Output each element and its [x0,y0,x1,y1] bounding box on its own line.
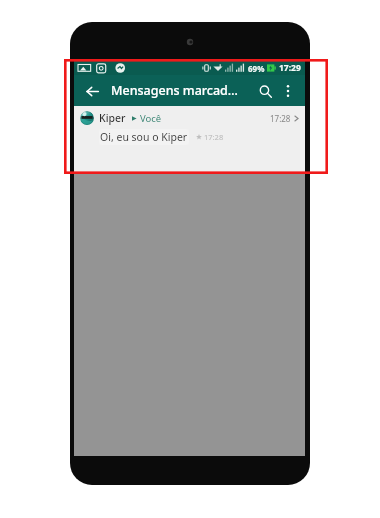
button[interactable]: Kiper [74,106,305,145]
staticText: 17:28 [270,113,291,124]
staticText: Mensagens marcad… [111,82,253,99]
staticText: 69% [248,63,265,74]
button[interactable]: Back [80,79,104,103]
staticText: Oi, eu sou o Kiper [100,130,188,144]
staticText: 17:28 [204,132,224,142]
staticText: 17:29 [279,62,301,74]
button[interactable]: Search [253,79,277,103]
button[interactable]: More options [277,80,299,102]
staticText: Você [140,112,162,125]
staticText: Kiper [99,111,126,125]
